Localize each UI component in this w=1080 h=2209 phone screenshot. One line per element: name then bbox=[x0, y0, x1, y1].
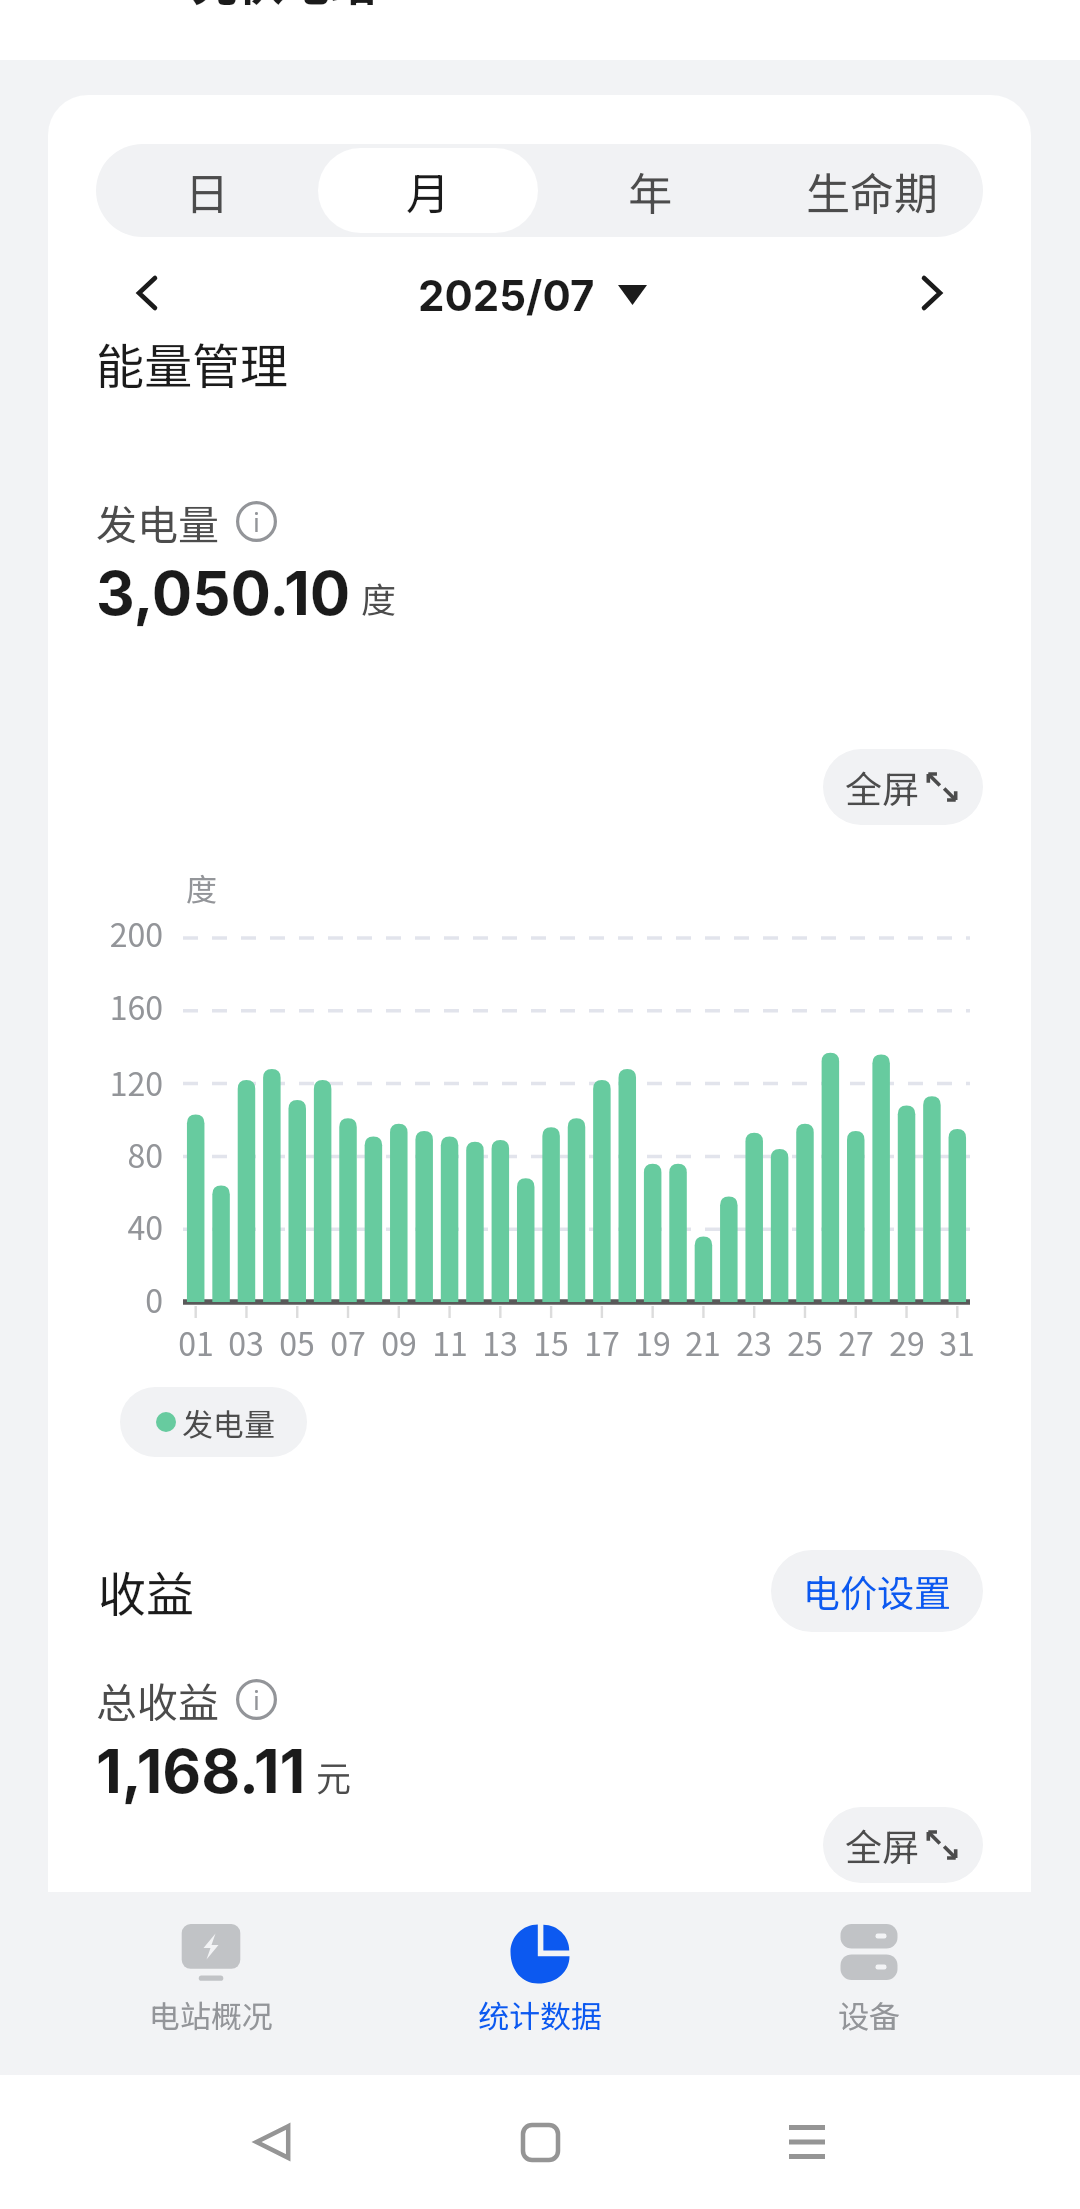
staticText: 03 bbox=[206, 1319, 286, 1365]
staticText: i bbox=[253, 1681, 260, 1717]
staticText: 生命期 bbox=[806, 159, 938, 223]
staticText: 25 bbox=[765, 1319, 845, 1365]
staticText: 01 bbox=[156, 1319, 236, 1365]
staticText: 元 bbox=[316, 1750, 352, 1801]
staticText: 07 bbox=[308, 1319, 388, 1365]
staticText: 全屏 bbox=[845, 1818, 919, 1872]
staticText: 1,168.11 bbox=[96, 1735, 306, 1808]
staticText: 设备 bbox=[838, 1992, 900, 2037]
staticText: 电价设置 bbox=[803, 1564, 951, 1618]
staticText: 80 bbox=[75, 1131, 163, 1177]
staticText: 度 bbox=[361, 572, 397, 623]
staticText: 电站概况 bbox=[149, 1992, 273, 2037]
button[interactable]: 日 bbox=[97, 148, 316, 233]
button[interactable]: Home bbox=[500, 2102, 580, 2182]
button[interactable]: 生命期 bbox=[762, 148, 982, 233]
staticText: 发电量 bbox=[182, 1400, 275, 1445]
staticText: 收益 bbox=[98, 1556, 195, 1626]
staticText: 40 bbox=[75, 1203, 163, 1249]
button[interactable]: Next month bbox=[897, 258, 967, 328]
button[interactable]: 电站概况 bbox=[47, 1892, 375, 2075]
button[interactable]: 设备 bbox=[704, 1892, 1033, 2075]
staticText: 27 bbox=[816, 1319, 896, 1365]
button[interactable]: 全屏 bbox=[823, 1807, 983, 1883]
button[interactable]: 年 bbox=[540, 148, 760, 233]
button[interactable]: Back bbox=[232, 2102, 312, 2182]
staticText: 29 bbox=[867, 1319, 947, 1365]
staticText: 19 bbox=[613, 1319, 693, 1365]
button[interactable]: Previous month bbox=[112, 258, 182, 328]
staticText: 月 bbox=[406, 159, 450, 223]
staticText: 2025/07 bbox=[418, 270, 595, 321]
staticText: 能量管理 bbox=[96, 328, 289, 398]
staticText: 度 bbox=[186, 865, 217, 910]
staticText: 23 bbox=[714, 1319, 794, 1365]
button[interactable]: 发电量 bbox=[120, 1387, 307, 1457]
button[interactable]: Recent apps bbox=[767, 2102, 847, 2182]
staticText: 15 bbox=[511, 1319, 591, 1365]
staticText: 0 bbox=[75, 1276, 163, 1322]
staticText: 日 bbox=[185, 159, 229, 223]
staticText: 年 bbox=[628, 159, 672, 223]
button[interactable]: 统计数据 bbox=[375, 1892, 704, 2075]
staticText: 11 bbox=[410, 1319, 490, 1365]
staticText: 3,050.10 bbox=[96, 557, 351, 630]
staticText: 31 bbox=[917, 1319, 997, 1365]
staticText: 13 bbox=[460, 1319, 540, 1365]
staticText: 200 bbox=[75, 910, 163, 956]
button[interactable]: 全屏 bbox=[823, 749, 983, 825]
staticText: 统计数据 bbox=[478, 1992, 602, 2037]
staticText: i bbox=[253, 503, 260, 539]
staticText: 09 bbox=[359, 1319, 439, 1365]
staticText: 160 bbox=[75, 983, 163, 1029]
staticText: 120 bbox=[75, 1059, 163, 1105]
button[interactable]: 月 bbox=[318, 148, 538, 233]
staticText: 全屏 bbox=[845, 760, 919, 814]
button[interactable]: 电价设置 bbox=[771, 1550, 983, 1632]
staticText: 光伏电站 bbox=[192, 0, 376, 8]
staticText: 21 bbox=[663, 1319, 743, 1365]
staticText: 17 bbox=[562, 1319, 642, 1365]
staticText: 总收益 bbox=[96, 1670, 219, 1729]
staticText: 05 bbox=[257, 1319, 337, 1365]
staticText: 发电量 bbox=[96, 492, 219, 551]
